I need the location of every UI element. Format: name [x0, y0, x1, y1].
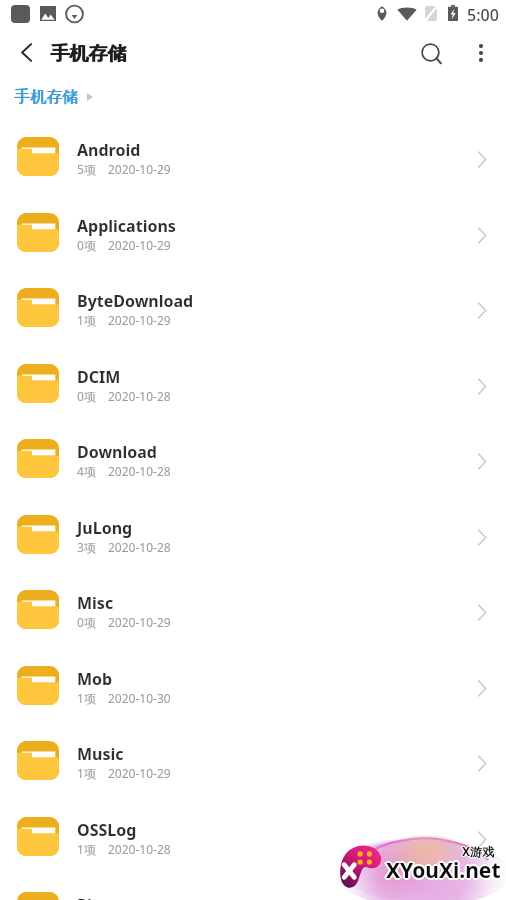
staticText: 2020-10-29 [108, 765, 171, 781]
staticText: 2020-10-28 [108, 539, 171, 555]
button[interactable]: Pictures [0, 873, 506, 900]
staticText: XYouXi.net [387, 855, 502, 884]
staticText: 2020-10-29 [108, 614, 171, 630]
button[interactable]: Download [0, 420, 506, 496]
staticText: XYouXi.net [385, 857, 500, 886]
staticText: 2020-10-29 [108, 237, 171, 253]
staticText: 2020-10-30 [108, 690, 171, 706]
staticText: 5:00 [467, 4, 499, 26]
staticText: 0项 [77, 388, 96, 404]
button[interactable]: Music [0, 722, 506, 798]
button[interactable]: Search [410, 32, 454, 75]
button[interactable]: ByteDownload [0, 269, 506, 345]
staticText: XYouXi.net [388, 856, 503, 885]
button[interactable]: Android [0, 118, 506, 194]
staticText: 5项 [77, 161, 96, 177]
staticText: 2020-10-28 [108, 841, 171, 857]
staticText: 4项 [77, 463, 96, 479]
staticText: 手机存储 [14, 87, 78, 107]
button[interactable]: Misc [0, 571, 506, 647]
staticText: 2020-10-28 [108, 388, 171, 404]
staticText: XYouXi.net [386, 858, 501, 887]
staticText: Mob [77, 668, 113, 690]
button[interactable]: Applications [0, 194, 506, 270]
staticText: 1项 [77, 312, 96, 328]
staticText: 0项 [77, 614, 96, 630]
staticText: X游戏 [461, 843, 494, 859]
staticText: Download [77, 441, 157, 463]
staticText: XYouXi.net [386, 856, 501, 885]
staticText: 手机存储 [50, 42, 126, 66]
staticText: Misc [77, 592, 114, 614]
staticText: 手机存储 [51, 42, 127, 66]
staticText: 2020-10-28 [108, 463, 171, 479]
staticText: 2020-10-29 [108, 161, 171, 177]
staticText: ByteDownload [77, 290, 194, 312]
staticText: X游戏 [462, 843, 495, 859]
staticText: X游戏 [463, 843, 496, 859]
button[interactable]: More options [459, 32, 503, 75]
staticText: Music [77, 743, 124, 765]
staticText: 2020-10-29 [108, 312, 171, 328]
staticText: Android [77, 139, 141, 161]
staticText: XYouXi.net [384, 856, 499, 885]
staticText: 3项 [77, 539, 96, 555]
staticText: OSSLog [77, 819, 137, 841]
staticText: X游戏 [462, 844, 495, 860]
staticText: DCIM [77, 366, 121, 388]
staticText: 1项 [77, 690, 96, 706]
staticText: 1项 [77, 841, 96, 857]
button[interactable]: Back [2, 32, 46, 75]
button[interactable]: Mob [0, 647, 506, 723]
staticText: X游戏 [462, 842, 495, 858]
staticText: JuLong [77, 517, 133, 539]
button[interactable]: 手机存储 [14, 87, 78, 107]
staticText: 0项 [77, 237, 96, 253]
button[interactable]: OSSLog [0, 798, 506, 874]
staticText: Applications [77, 215, 176, 237]
button[interactable]: DCIM [0, 345, 506, 421]
staticText: 手机存储 [15, 87, 79, 107]
staticText: Pictures [77, 894, 142, 900]
button[interactable]: JuLong [0, 496, 506, 572]
staticText: XYouXi.net [386, 854, 501, 883]
staticText: 1项 [77, 765, 96, 781]
staticText: XYouXi.net [387, 857, 502, 886]
staticText: XYouXi.net [385, 855, 500, 884]
